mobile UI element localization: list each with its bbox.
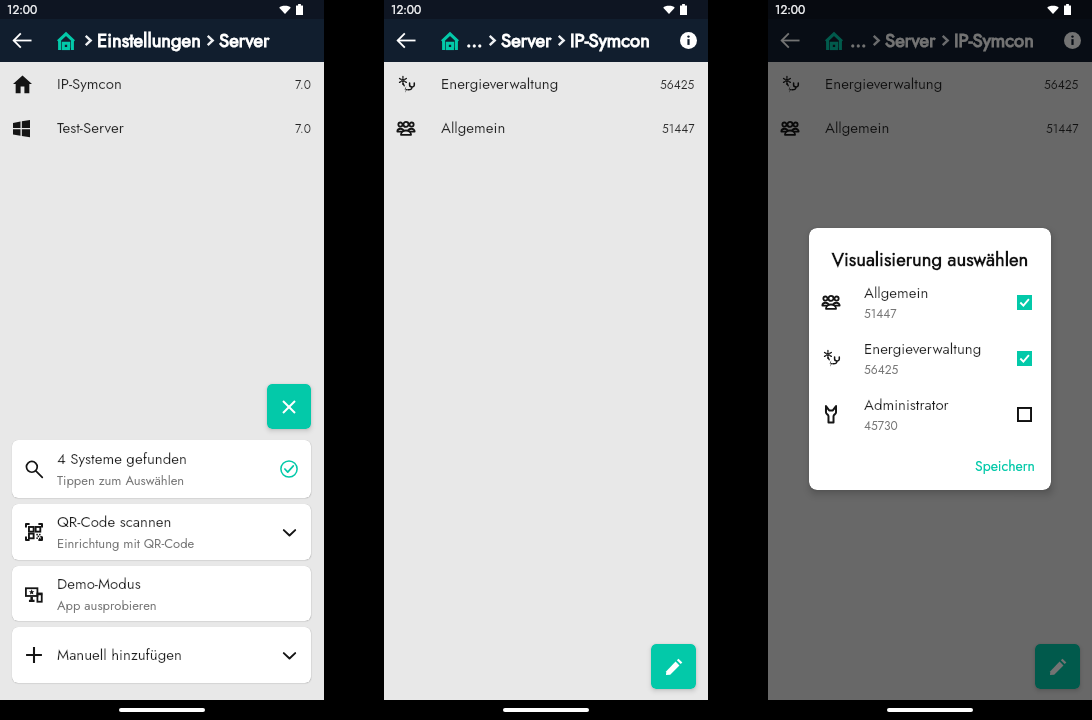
staticText: IP-Symcon [57, 73, 295, 95]
staticText: 51447 [864, 305, 897, 322]
button[interactable]: Zurück [0, 19, 44, 62]
button[interactable]: Server [501, 27, 552, 54]
button[interactable]: Info [668, 19, 708, 62]
staticText: 56425 [864, 361, 899, 378]
button[interactable]: ... [466, 27, 483, 54]
button[interactable]: 4 Systeme gefunden [12, 440, 311, 498]
button[interactable]: Server [219, 27, 270, 54]
staticText: Einrichtung mit QR-Code [57, 534, 195, 553]
staticText: 12:00 [775, 1, 806, 18]
staticText: Demo-Modus [57, 573, 141, 595]
staticText: Allgemein [825, 117, 1046, 139]
button[interactable]: Bearbeiten [651, 644, 696, 689]
staticText: 7.0 [295, 120, 311, 137]
button[interactable]: Allgemein [768, 106, 1092, 150]
staticText: Administrator [864, 394, 949, 416]
button[interactable]: Startseite [53, 19, 79, 62]
button[interactable]: QR-Code scannen [12, 504, 311, 560]
staticText: 56425 [660, 76, 695, 93]
staticText: 56425 [1044, 76, 1079, 93]
button[interactable]: Startseite [821, 19, 847, 62]
button[interactable]: IP-Symcon [0, 62, 324, 106]
button[interactable]: Allgemein [809, 274, 1051, 330]
button[interactable]: Allgemein [384, 106, 708, 150]
button[interactable]: Demo-Modus [12, 566, 311, 621]
staticText: 51447 [1046, 120, 1079, 137]
button[interactable]: Einstellungen [97, 27, 201, 54]
staticText: 4 Systeme gefunden [57, 448, 187, 470]
button[interactable]: IP-Symcon [570, 27, 650, 54]
button[interactable]: Server [885, 27, 936, 54]
staticText: Manuell hinzufügen [57, 644, 182, 666]
button[interactable]: Startseite [437, 19, 463, 62]
button[interactable]: IP-Symcon [954, 27, 1034, 54]
staticText: Speichern [975, 456, 1035, 476]
button[interactable]: Zurück [384, 19, 428, 62]
staticText: Test-Server [57, 117, 295, 139]
staticText: 51447 [662, 120, 695, 137]
staticText: Energieverwaltung [441, 73, 660, 95]
button[interactable]: Test-Server [0, 106, 324, 150]
staticText: 12:00 [7, 1, 38, 18]
staticText: Tippen zum Auswählen [57, 471, 185, 490]
button[interactable]: Speichern [969, 452, 1041, 480]
button[interactable]: Schließen [267, 384, 311, 429]
button[interactable]: Energieverwaltung [809, 330, 1051, 386]
staticText: 45730 [864, 417, 898, 434]
button[interactable]: Administrator [809, 386, 1051, 442]
staticText: Energieverwaltung [825, 73, 1044, 95]
button[interactable]: Energieverwaltung [384, 62, 708, 106]
button[interactable]: Info [1052, 19, 1092, 62]
button[interactable]: Zurück [768, 19, 812, 62]
staticText: 7.0 [295, 76, 311, 93]
button[interactable]: ... [850, 27, 867, 54]
staticText: App ausprobieren [57, 596, 157, 615]
button[interactable]: Bearbeiten [1035, 644, 1080, 689]
button[interactable]: Manuell hinzufügen [12, 627, 311, 683]
staticText: Energieverwaltung [864, 338, 982, 360]
staticText: QR-Code scannen [57, 511, 172, 533]
staticText: Allgemein [441, 117, 662, 139]
staticText: Allgemein [864, 282, 929, 304]
staticText: Visualisierung auswählen [809, 246, 1051, 273]
button[interactable]: Energieverwaltung [768, 62, 1092, 106]
staticText: 12:00 [391, 1, 422, 18]
